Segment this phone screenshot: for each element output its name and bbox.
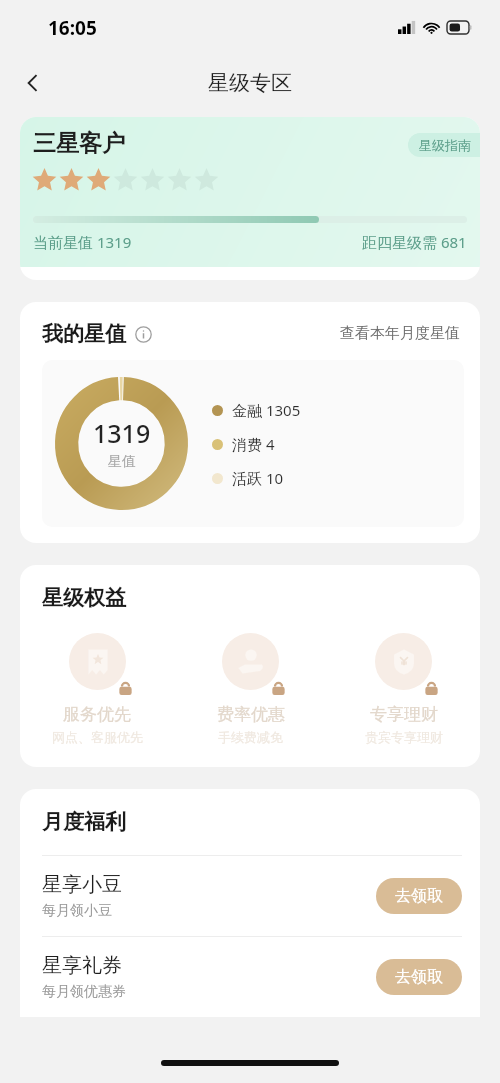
staticText: 月度福利 (42, 809, 126, 835)
button[interactable]: Back (10, 60, 56, 106)
button[interactable]: 星享礼券 (20, 937, 480, 1017)
staticText: 每月领优惠券 (42, 983, 126, 1001)
staticText: 星级指南 (419, 137, 471, 153)
staticText: 星享小豆 (42, 872, 122, 897)
staticText: 我的星值 (42, 321, 126, 347)
staticText: 网点、客服优先 (52, 729, 143, 745)
button[interactable]: 去领取 (376, 878, 462, 914)
staticText: 星级权益 (42, 585, 126, 611)
staticText: 金融 1305 (232, 400, 301, 420)
staticText: 专享理财 (370, 704, 438, 725)
button[interactable]: 费率优惠 (174, 633, 327, 745)
staticText: 费率优惠 (217, 704, 285, 725)
staticText: 16:05 (48, 15, 97, 41)
button[interactable]: Info (133, 324, 153, 344)
button[interactable]: 服务优先 (20, 633, 174, 745)
staticText: 去领取 (395, 967, 443, 987)
button[interactable]: 三星客户 (20, 117, 480, 267)
button[interactable]: 去领取 (376, 959, 462, 995)
staticText: 查看本年月度星值 (340, 324, 460, 343)
button[interactable]: 查看本年月度星值 (336, 320, 464, 347)
button[interactable]: 星级指南 (408, 133, 480, 157)
staticText: 去领取 (395, 886, 443, 906)
staticText: 当前星值 1319 (33, 232, 132, 252)
staticText: 星值 (108, 453, 136, 471)
staticText: 三星客户 (33, 129, 125, 158)
staticText: 活跃 10 (232, 468, 284, 488)
staticText: 手续费减免 (218, 729, 283, 745)
staticText: 1319 (93, 416, 151, 450)
button[interactable]: 星享小豆 (20, 856, 480, 936)
staticText: 服务优先 (63, 704, 131, 725)
button[interactable]: 专享理财 (327, 633, 480, 745)
staticText: 贵宾专享理财 (365, 729, 443, 745)
staticText: 消费 4 (232, 434, 275, 454)
staticText: 星享礼券 (42, 953, 122, 978)
staticText: 每月领小豆 (42, 902, 112, 920)
staticText: 星级专区 (208, 70, 292, 96)
staticText: 距四星级需 681 (362, 232, 467, 252)
